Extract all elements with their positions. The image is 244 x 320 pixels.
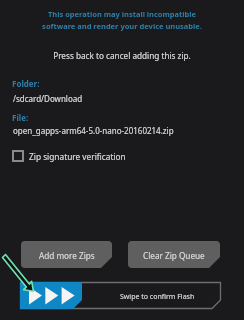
button[interactable]: Add more Zips [21,241,112,268]
button[interactable]: Swipe to confirm Flash [20,282,221,309]
staticText: open_gapps-arm64-5.0-nano-20160214.zip [13,125,174,136]
staticText: Add more Zips [39,250,95,261]
staticText: /sdcard/Download [13,93,83,104]
staticText: File: [12,112,29,123]
staticText: Folder: [12,78,40,89]
staticText: This operation may install incompatible … [0,9,244,31]
button[interactable]: Zip signature verification [12,150,126,162]
other: Pointer [0,0,244,320]
staticText: Press back to cancel adding this zip. [0,50,244,61]
staticText: Zip signature verification [29,151,126,162]
button[interactable]: Clear Zip Queue [128,241,220,268]
staticText: Swipe to confirm Flash [120,292,195,302]
staticText: Clear Zip Queue [143,250,205,261]
